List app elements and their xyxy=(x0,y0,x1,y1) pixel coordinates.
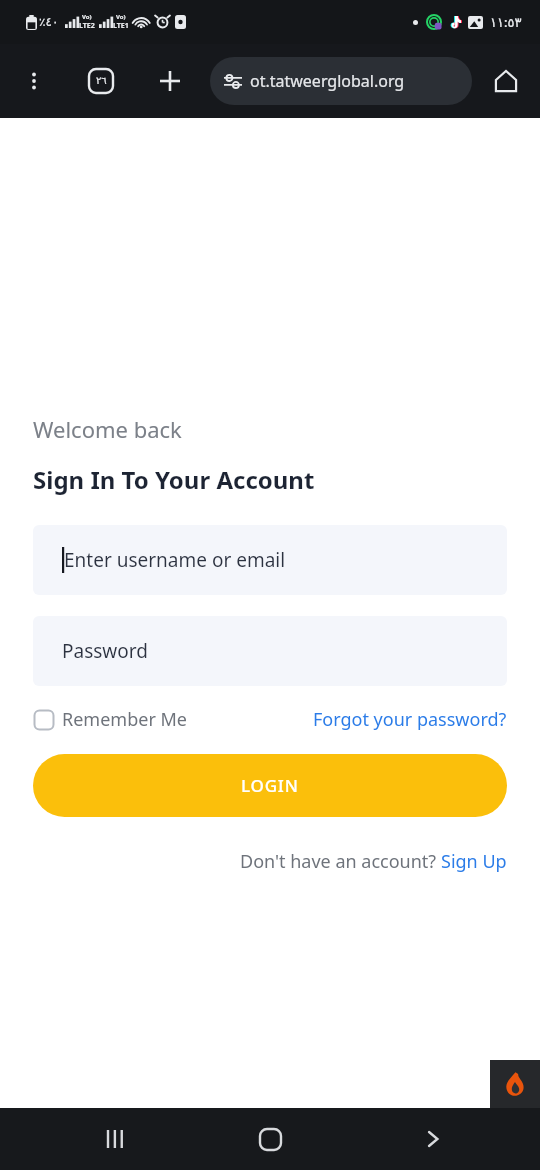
staticText: Vo) xyxy=(116,13,126,21)
staticText: LTE2 xyxy=(79,21,95,31)
staticText: Vo) xyxy=(82,13,92,21)
button[interactable]: More options xyxy=(18,65,50,97)
staticText: Remember Me xyxy=(62,707,187,732)
button[interactable]: Remember Me xyxy=(33,707,187,732)
button[interactable]: LOGIN xyxy=(33,754,507,817)
staticText: Password xyxy=(62,638,148,664)
staticText: Sign In To Your Account xyxy=(33,463,315,496)
button[interactable]: Sign Up xyxy=(441,849,507,874)
staticText: Don't have an account? xyxy=(240,849,441,874)
button[interactable]: Password xyxy=(33,616,507,686)
staticText: ١١:٥٣ xyxy=(490,13,522,31)
staticText: LTE1 xyxy=(113,21,129,31)
staticText: ٪٤٠ xyxy=(39,15,59,29)
button[interactable]: Enter username or email xyxy=(33,525,507,595)
staticText: LOGIN xyxy=(241,774,299,797)
button[interactable]: Performance monitor xyxy=(490,1060,540,1108)
button[interactable]: Tabs xyxy=(84,64,118,98)
button[interactable]: Home xyxy=(486,61,526,101)
staticText: ٢٦ xyxy=(96,75,107,87)
button[interactable]: Forgot your password? xyxy=(313,707,507,732)
button[interactable]: Recent apps xyxy=(90,1112,144,1166)
button[interactable]: Home xyxy=(243,1112,297,1166)
staticText: ot.tatweerglobal.org xyxy=(250,70,405,92)
button[interactable]: Back xyxy=(406,1112,460,1166)
staticText: Forgot your password? xyxy=(313,707,507,732)
staticText: Enter username or email xyxy=(64,547,286,573)
staticText: Welcome back xyxy=(33,414,182,444)
button[interactable]: New tab xyxy=(152,63,188,99)
staticText: Sign Up xyxy=(441,849,507,874)
button[interactable]: ot.tatweerglobal.org xyxy=(210,57,472,105)
